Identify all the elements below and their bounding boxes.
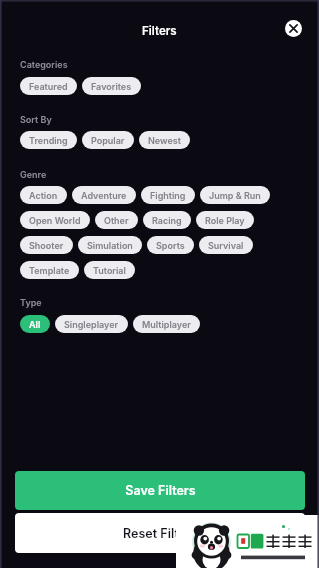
button[interactable]: Open World [20,211,90,229]
staticText: Racing [152,215,182,226]
staticText: All [29,319,41,330]
button[interactable]: Tutorial [84,261,135,279]
staticText: Jump & Run [209,190,261,201]
button[interactable]: Survival [199,236,253,254]
button[interactable]: Reset Filters [15,513,305,553]
staticText: Categories [20,59,68,70]
button[interactable]: Multiplayer [133,315,200,333]
button[interactable]: Action [20,186,67,204]
staticText: Reset Filters [123,526,198,541]
staticText: Popular [91,135,125,146]
button[interactable]: All [20,315,50,333]
staticText: Action [29,190,58,201]
staticText: Template [29,265,70,276]
button[interactable]: Fighting [141,186,195,204]
staticText: Other [104,215,129,226]
button[interactable]: Singleplayer [55,315,128,333]
button[interactable]: Simulation [78,236,142,254]
button[interactable]: Trending [20,131,77,149]
staticText: Singleplayer [64,319,119,330]
staticText: Multiplayer [142,319,191,330]
staticText: Filters [142,24,177,38]
button[interactable]: Jump & Run [200,186,270,204]
button[interactable]: Newest [139,131,190,149]
button[interactable]: Featured [20,77,77,95]
staticText: Newest [148,135,181,146]
button[interactable]: Other [95,211,138,229]
button[interactable]: Favorites [82,77,141,95]
staticText: Sports [156,240,185,251]
staticText: Trending [29,135,68,146]
staticText: Adventure [81,190,127,201]
staticText: Fighting [150,190,186,201]
staticText: Survival [208,240,244,251]
staticText: Open World [29,215,81,226]
staticText: Featured [29,81,68,92]
button[interactable]: Template [20,261,79,279]
staticText: Role Play [205,215,245,226]
staticText: Tutorial [93,265,126,276]
staticText: Simulation [87,240,133,251]
staticText: Favorites [91,81,132,92]
button[interactable]: Shooter [20,236,73,254]
staticText: Shooter [29,240,64,251]
staticText: Save Filters [125,483,196,498]
button[interactable]: Role Play [196,211,254,229]
button[interactable]: Adventure [72,186,136,204]
button[interactable]: Popular [82,131,134,149]
staticText: Type [20,297,42,308]
button[interactable]: Sports [147,236,194,254]
staticText: Sort By [20,114,52,125]
button[interactable]: Racing [143,211,191,229]
button[interactable]: Close [285,20,302,37]
button[interactable]: Save Filters [15,471,305,510]
staticText: Genre [20,169,47,180]
